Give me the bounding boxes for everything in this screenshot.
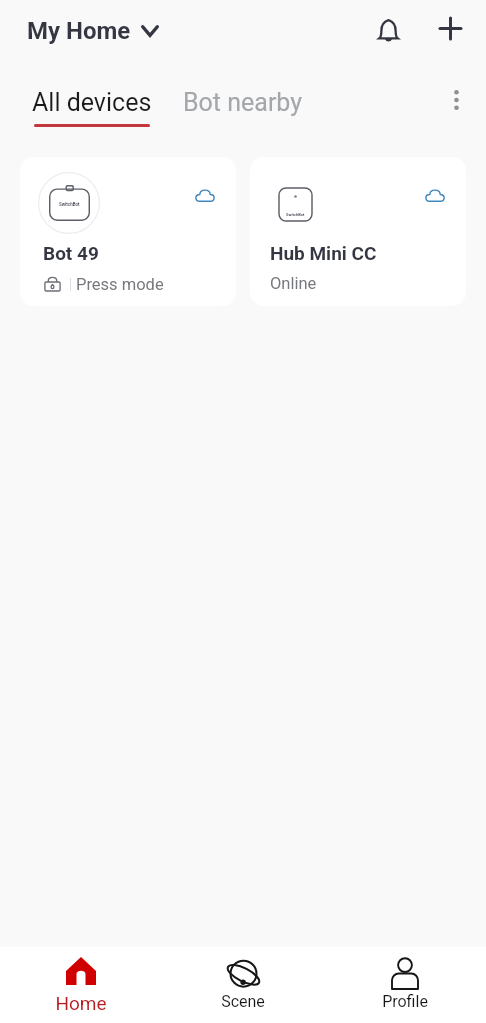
button[interactable]: My Home: [13, 9, 173, 53]
button[interactable]: SwitchBot: [20, 157, 236, 306]
staticText: Home: [55, 992, 107, 1014]
button[interactable]: More options: [433, 77, 479, 123]
button[interactable]: Add device: [427, 8, 473, 54]
button[interactable]: Notifications: [365, 8, 411, 54]
staticText: SwitchBot: [286, 212, 305, 217]
button[interactable]: Scene: [162, 947, 324, 1023]
staticText: All devices: [32, 88, 152, 117]
staticText: Online: [270, 274, 317, 293]
button[interactable]: SwitchBot: [250, 157, 466, 306]
staticText: Profile: [382, 992, 428, 1011]
staticText: Hub Mini CC: [270, 242, 377, 264]
staticText: My Home: [27, 17, 131, 45]
staticText: Bot nearby: [183, 88, 303, 117]
staticText: SwitchBot: [59, 202, 80, 207]
staticText: Press mode: [76, 275, 164, 294]
button[interactable]: All devices: [18, 62, 166, 127]
staticText: Bot 49: [43, 242, 99, 264]
button[interactable]: Profile: [324, 947, 486, 1023]
button[interactable]: Bot nearby: [169, 62, 317, 117]
button[interactable]: Home: [0, 947, 162, 1023]
staticText: Scene: [221, 992, 265, 1011]
